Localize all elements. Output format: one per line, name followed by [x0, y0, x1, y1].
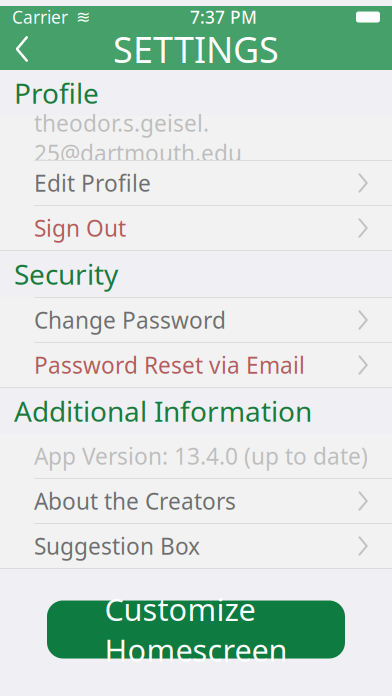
staticText: Password Reset via Email — [34, 350, 305, 380]
staticText: Security — [14, 255, 118, 293]
button[interactable]: About the Creators — [0, 478, 392, 523]
button[interactable]: Change Password — [0, 297, 392, 342]
staticText: Additional Information — [14, 392, 312, 430]
staticText: Change Password — [34, 305, 226, 335]
staticText: 7:37 PM — [190, 5, 257, 28]
button[interactable]: Password Reset via Email — [0, 342, 392, 387]
staticText: ≋ — [76, 7, 91, 27]
staticText: Customize Homescreen — [104, 589, 287, 670]
staticText: Sign Out — [34, 213, 126, 243]
button[interactable]: Edit Profile — [0, 160, 392, 205]
staticText: Profile — [14, 74, 99, 112]
button[interactable]: Customize Homescreen — [47, 600, 345, 658]
button[interactable]: Sign Out — [0, 205, 392, 250]
staticText: Carrier — [12, 5, 68, 28]
staticText: App Version: 13.4.0 (up to date) — [34, 441, 368, 471]
button[interactable]: Back — [0, 28, 44, 70]
button[interactable]: Suggestion Box — [0, 523, 392, 568]
staticText: Edit Profile — [34, 168, 151, 198]
staticText: SETTINGS — [113, 25, 279, 73]
staticText: theodor.s.geisel.25@dartmouth.edu — [34, 108, 242, 168]
staticText: Suggestion Box — [34, 531, 200, 561]
staticText: About the Creators — [34, 486, 236, 516]
